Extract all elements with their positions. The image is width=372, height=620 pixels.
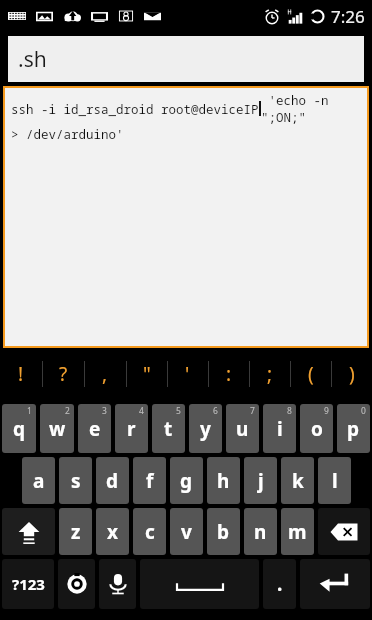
staticText: 8 bbox=[287, 405, 292, 417]
staticText: v bbox=[181, 519, 192, 545]
button[interactable]: : bbox=[208, 348, 249, 400]
button[interactable]: m bbox=[281, 508, 314, 555]
button[interactable]: ?123 bbox=[2, 559, 54, 609]
staticText: 7:26 bbox=[331, 5, 365, 28]
staticText: 6 bbox=[213, 405, 218, 417]
button[interactable]: .sh bbox=[8, 36, 364, 82]
staticText: y bbox=[200, 416, 211, 442]
button[interactable]: Settings bbox=[58, 559, 95, 609]
staticText: a bbox=[33, 468, 45, 494]
button[interactable]: b bbox=[207, 508, 240, 555]
staticText: i bbox=[277, 416, 283, 442]
button[interactable]: Backspace bbox=[318, 508, 370, 555]
button[interactable]: ( bbox=[290, 348, 331, 400]
button[interactable]: l bbox=[318, 457, 351, 504]
staticText: h bbox=[217, 468, 230, 494]
staticText: m bbox=[288, 519, 307, 545]
staticText: 5 bbox=[176, 405, 181, 417]
staticText: 'echo -n ";ON;" bbox=[261, 92, 369, 126]
staticText: 1 bbox=[27, 405, 32, 417]
button[interactable]: 7 bbox=[226, 404, 259, 453]
button[interactable]: 2 bbox=[40, 404, 74, 453]
staticText: ssh -i id_rsa_droid root@deviceIP bbox=[11, 101, 259, 118]
button[interactable]: Enter bbox=[300, 559, 370, 609]
staticText: n bbox=[254, 519, 267, 545]
staticText: q bbox=[13, 416, 26, 442]
staticText: , bbox=[102, 361, 108, 387]
staticText: k bbox=[292, 468, 304, 494]
staticText: s bbox=[71, 468, 81, 494]
staticText: ? bbox=[59, 361, 68, 387]
button[interactable]: 6 bbox=[189, 404, 222, 453]
staticText: ! bbox=[18, 361, 24, 387]
button[interactable]: 1 bbox=[2, 404, 36, 453]
staticText: p bbox=[347, 416, 360, 442]
button[interactable]: ssh -i id_rsa_droid root@deviceIP bbox=[3, 86, 369, 348]
button[interactable]: h bbox=[207, 457, 240, 504]
staticText: ) bbox=[349, 361, 355, 387]
staticText: ' bbox=[185, 361, 190, 387]
staticText: 2 bbox=[65, 405, 70, 417]
button[interactable]: g bbox=[170, 457, 203, 504]
button[interactable]: 3 bbox=[78, 404, 111, 453]
staticText: o bbox=[311, 416, 323, 442]
staticText: 7 bbox=[250, 405, 255, 417]
button[interactable]: 4 bbox=[115, 404, 148, 453]
button[interactable]: ' bbox=[167, 348, 208, 400]
button[interactable]: ) bbox=[331, 348, 372, 400]
staticText: 4 bbox=[139, 405, 144, 417]
staticText: ?123 bbox=[12, 574, 45, 594]
button[interactable]: 9 bbox=[300, 404, 333, 453]
button[interactable]: ; bbox=[249, 348, 290, 400]
staticText: 9 bbox=[324, 405, 329, 417]
button[interactable]: v bbox=[170, 508, 203, 555]
staticText: ; bbox=[267, 361, 273, 387]
button[interactable]: n bbox=[244, 508, 277, 555]
staticText: x bbox=[107, 519, 118, 545]
button[interactable]: d bbox=[96, 457, 129, 504]
button[interactable]: a bbox=[22, 457, 55, 504]
staticText: g bbox=[180, 468, 193, 494]
staticText: > /dev/arduino' bbox=[11, 126, 124, 143]
button[interactable]: k bbox=[281, 457, 314, 504]
staticText: u bbox=[236, 416, 249, 442]
staticText: b bbox=[217, 519, 230, 545]
staticText: 0 bbox=[361, 405, 366, 417]
button[interactable]: " bbox=[126, 348, 167, 400]
button[interactable]: f bbox=[133, 457, 166, 504]
staticText: .sh bbox=[18, 45, 47, 74]
staticText: l bbox=[332, 468, 338, 494]
staticText: j bbox=[258, 468, 264, 494]
button[interactable]: ? bbox=[42, 348, 84, 400]
staticText: w bbox=[49, 416, 66, 442]
staticText: . bbox=[277, 571, 283, 597]
button[interactable]: 0 bbox=[337, 404, 370, 453]
staticText: " bbox=[143, 361, 151, 387]
staticText: t bbox=[164, 416, 173, 442]
button[interactable]: 5 bbox=[152, 404, 185, 453]
staticText: ( bbox=[308, 361, 314, 387]
button[interactable]: Voice input bbox=[99, 559, 136, 609]
button[interactable]: Shift bbox=[2, 508, 55, 555]
button[interactable]: 8 bbox=[263, 404, 296, 453]
staticText: e bbox=[89, 416, 101, 442]
staticText: d bbox=[106, 468, 119, 494]
button[interactable]: Space bbox=[140, 559, 259, 609]
staticText: z bbox=[71, 519, 81, 545]
button[interactable]: ! bbox=[0, 348, 42, 400]
staticText: : bbox=[226, 361, 232, 387]
button[interactable]: , bbox=[84, 348, 126, 400]
button[interactable]: z bbox=[59, 508, 92, 555]
staticText: 3 bbox=[102, 405, 107, 417]
button[interactable]: s bbox=[59, 457, 92, 504]
staticText: f bbox=[146, 468, 154, 494]
button[interactable]: . bbox=[263, 559, 296, 609]
staticText: r bbox=[127, 416, 136, 442]
button[interactable]: x bbox=[96, 508, 129, 555]
button[interactable]: c bbox=[133, 508, 166, 555]
staticText: c bbox=[145, 519, 155, 545]
button[interactable]: j bbox=[244, 457, 277, 504]
